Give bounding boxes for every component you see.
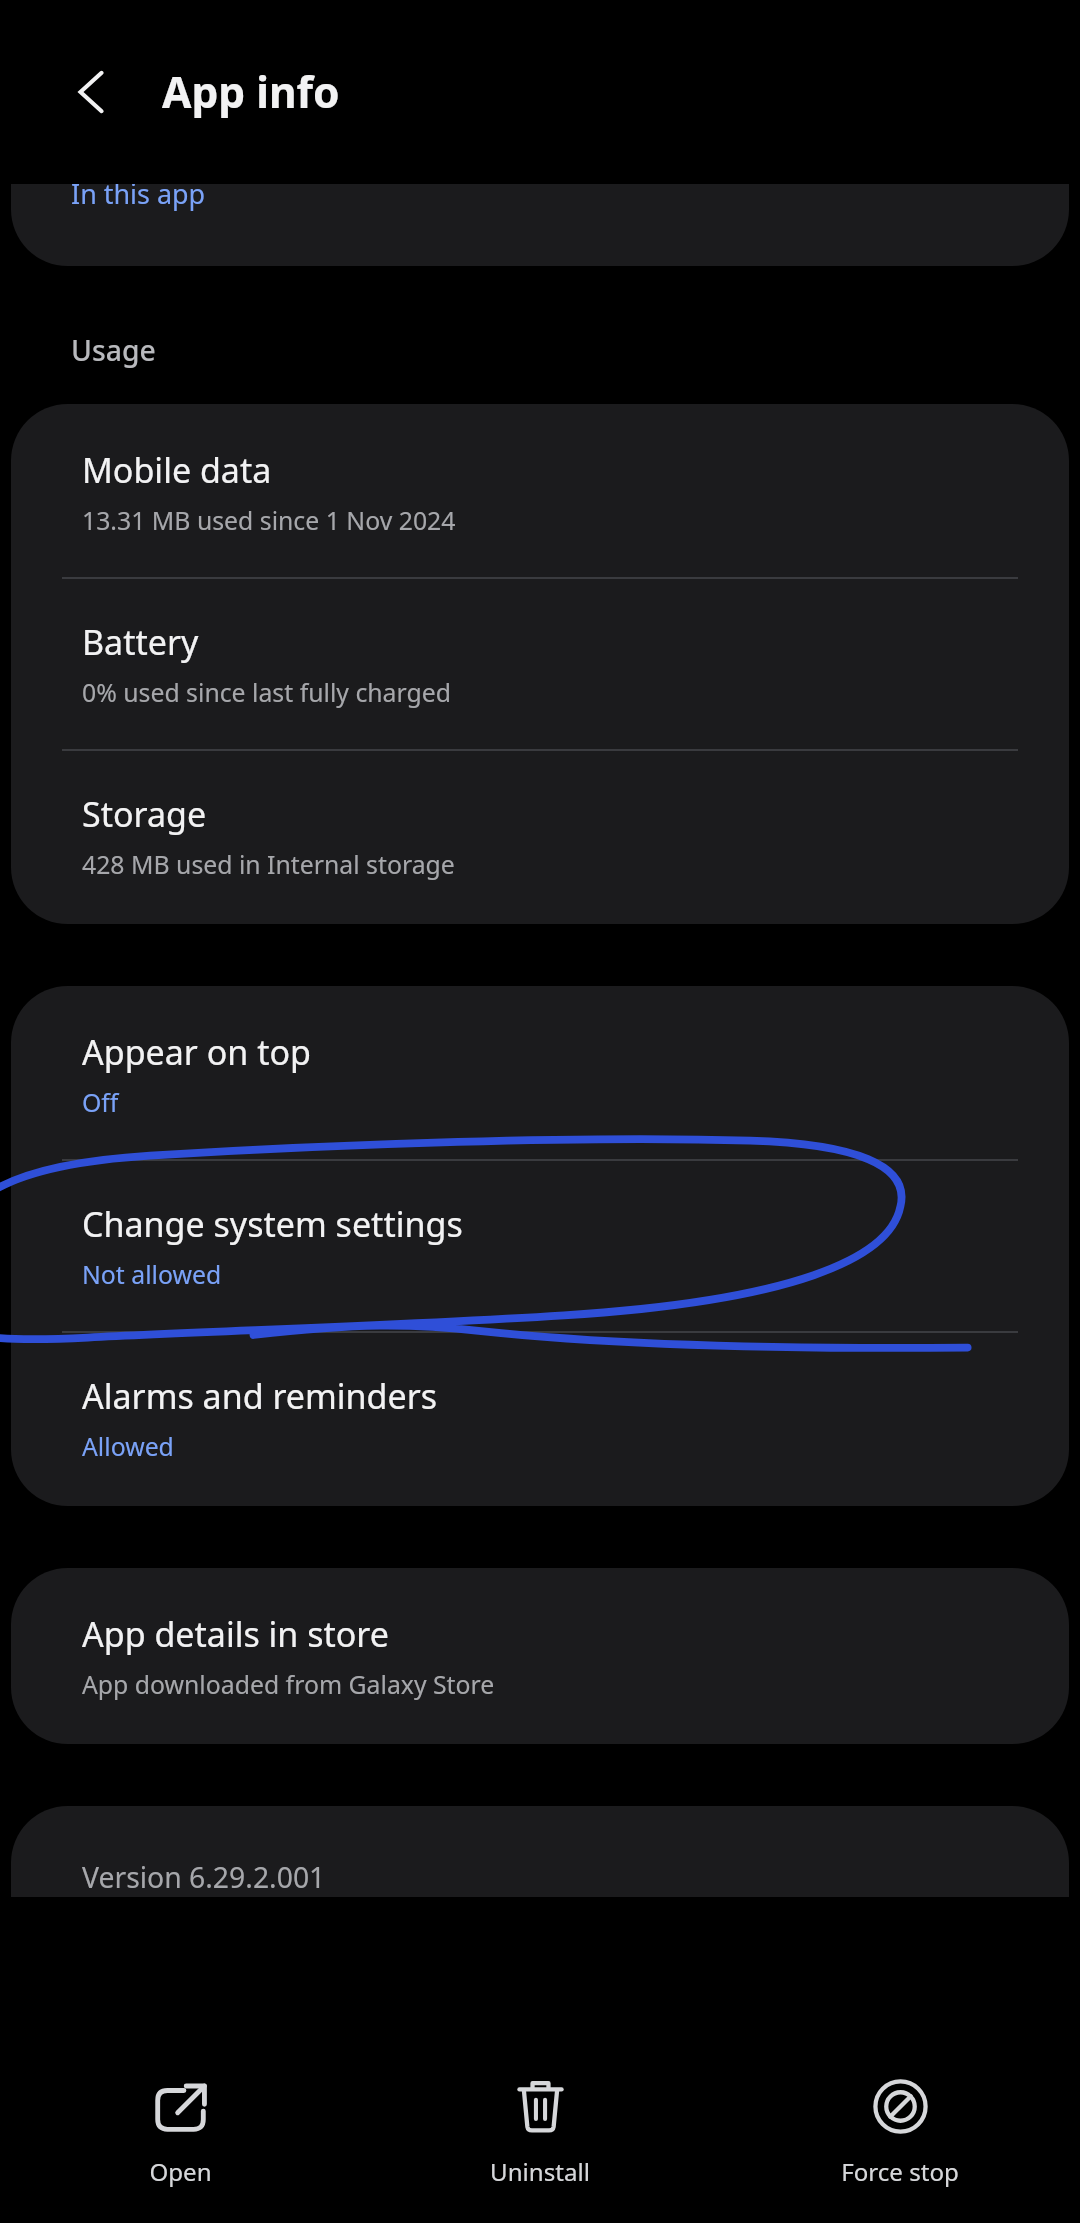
staticText: Version 6.29.2.001 <box>82 1858 326 1897</box>
button[interactable]: Alarms and reminders <box>11 1333 1069 1506</box>
button[interactable]: In this app <box>11 184 1069 266</box>
button[interactable]: Battery <box>11 579 1069 749</box>
staticText: Not allowed <box>82 1257 222 1291</box>
staticText: Off <box>82 1085 119 1119</box>
staticText: Appear on top <box>82 1029 311 1075</box>
staticText: App downloaded from Galaxy Store <box>82 1667 495 1701</box>
staticText: Battery <box>82 619 199 665</box>
staticText: Alarms and reminders <box>82 1373 438 1419</box>
button[interactable]: Force stop <box>720 2061 1080 2205</box>
staticText: Force stop <box>841 2155 959 2188</box>
staticText: App details in store <box>82 1611 389 1657</box>
staticText: 0% used since last fully charged <box>82 675 452 709</box>
button[interactable]: Mobile data <box>11 404 1069 577</box>
staticText: 428 MB used in Internal storage <box>82 847 455 881</box>
button[interactable]: Appear on top <box>11 986 1069 1159</box>
button[interactable]: Back <box>45 45 139 139</box>
button[interactable]: Uninstall <box>360 2061 720 2205</box>
button[interactable]: Storage <box>11 751 1069 924</box>
staticText: Mobile data <box>82 447 272 493</box>
staticText: Storage <box>82 791 207 837</box>
staticText: App info <box>162 63 340 121</box>
staticText: Change system settings <box>82 1201 463 1247</box>
button[interactable]: App details in store <box>11 1568 1069 1744</box>
button[interactable]: Open <box>0 2061 360 2205</box>
staticText: Usage <box>71 331 156 370</box>
staticText: Allowed <box>82 1429 174 1463</box>
button[interactable]: Change system settings <box>11 1161 1069 1331</box>
staticText: 13.31 MB used since 1 Nov 2024 <box>82 503 456 537</box>
staticText: Open <box>149 2155 212 2188</box>
staticText: In this app <box>71 184 206 212</box>
staticText: Uninstall <box>490 2155 590 2188</box>
